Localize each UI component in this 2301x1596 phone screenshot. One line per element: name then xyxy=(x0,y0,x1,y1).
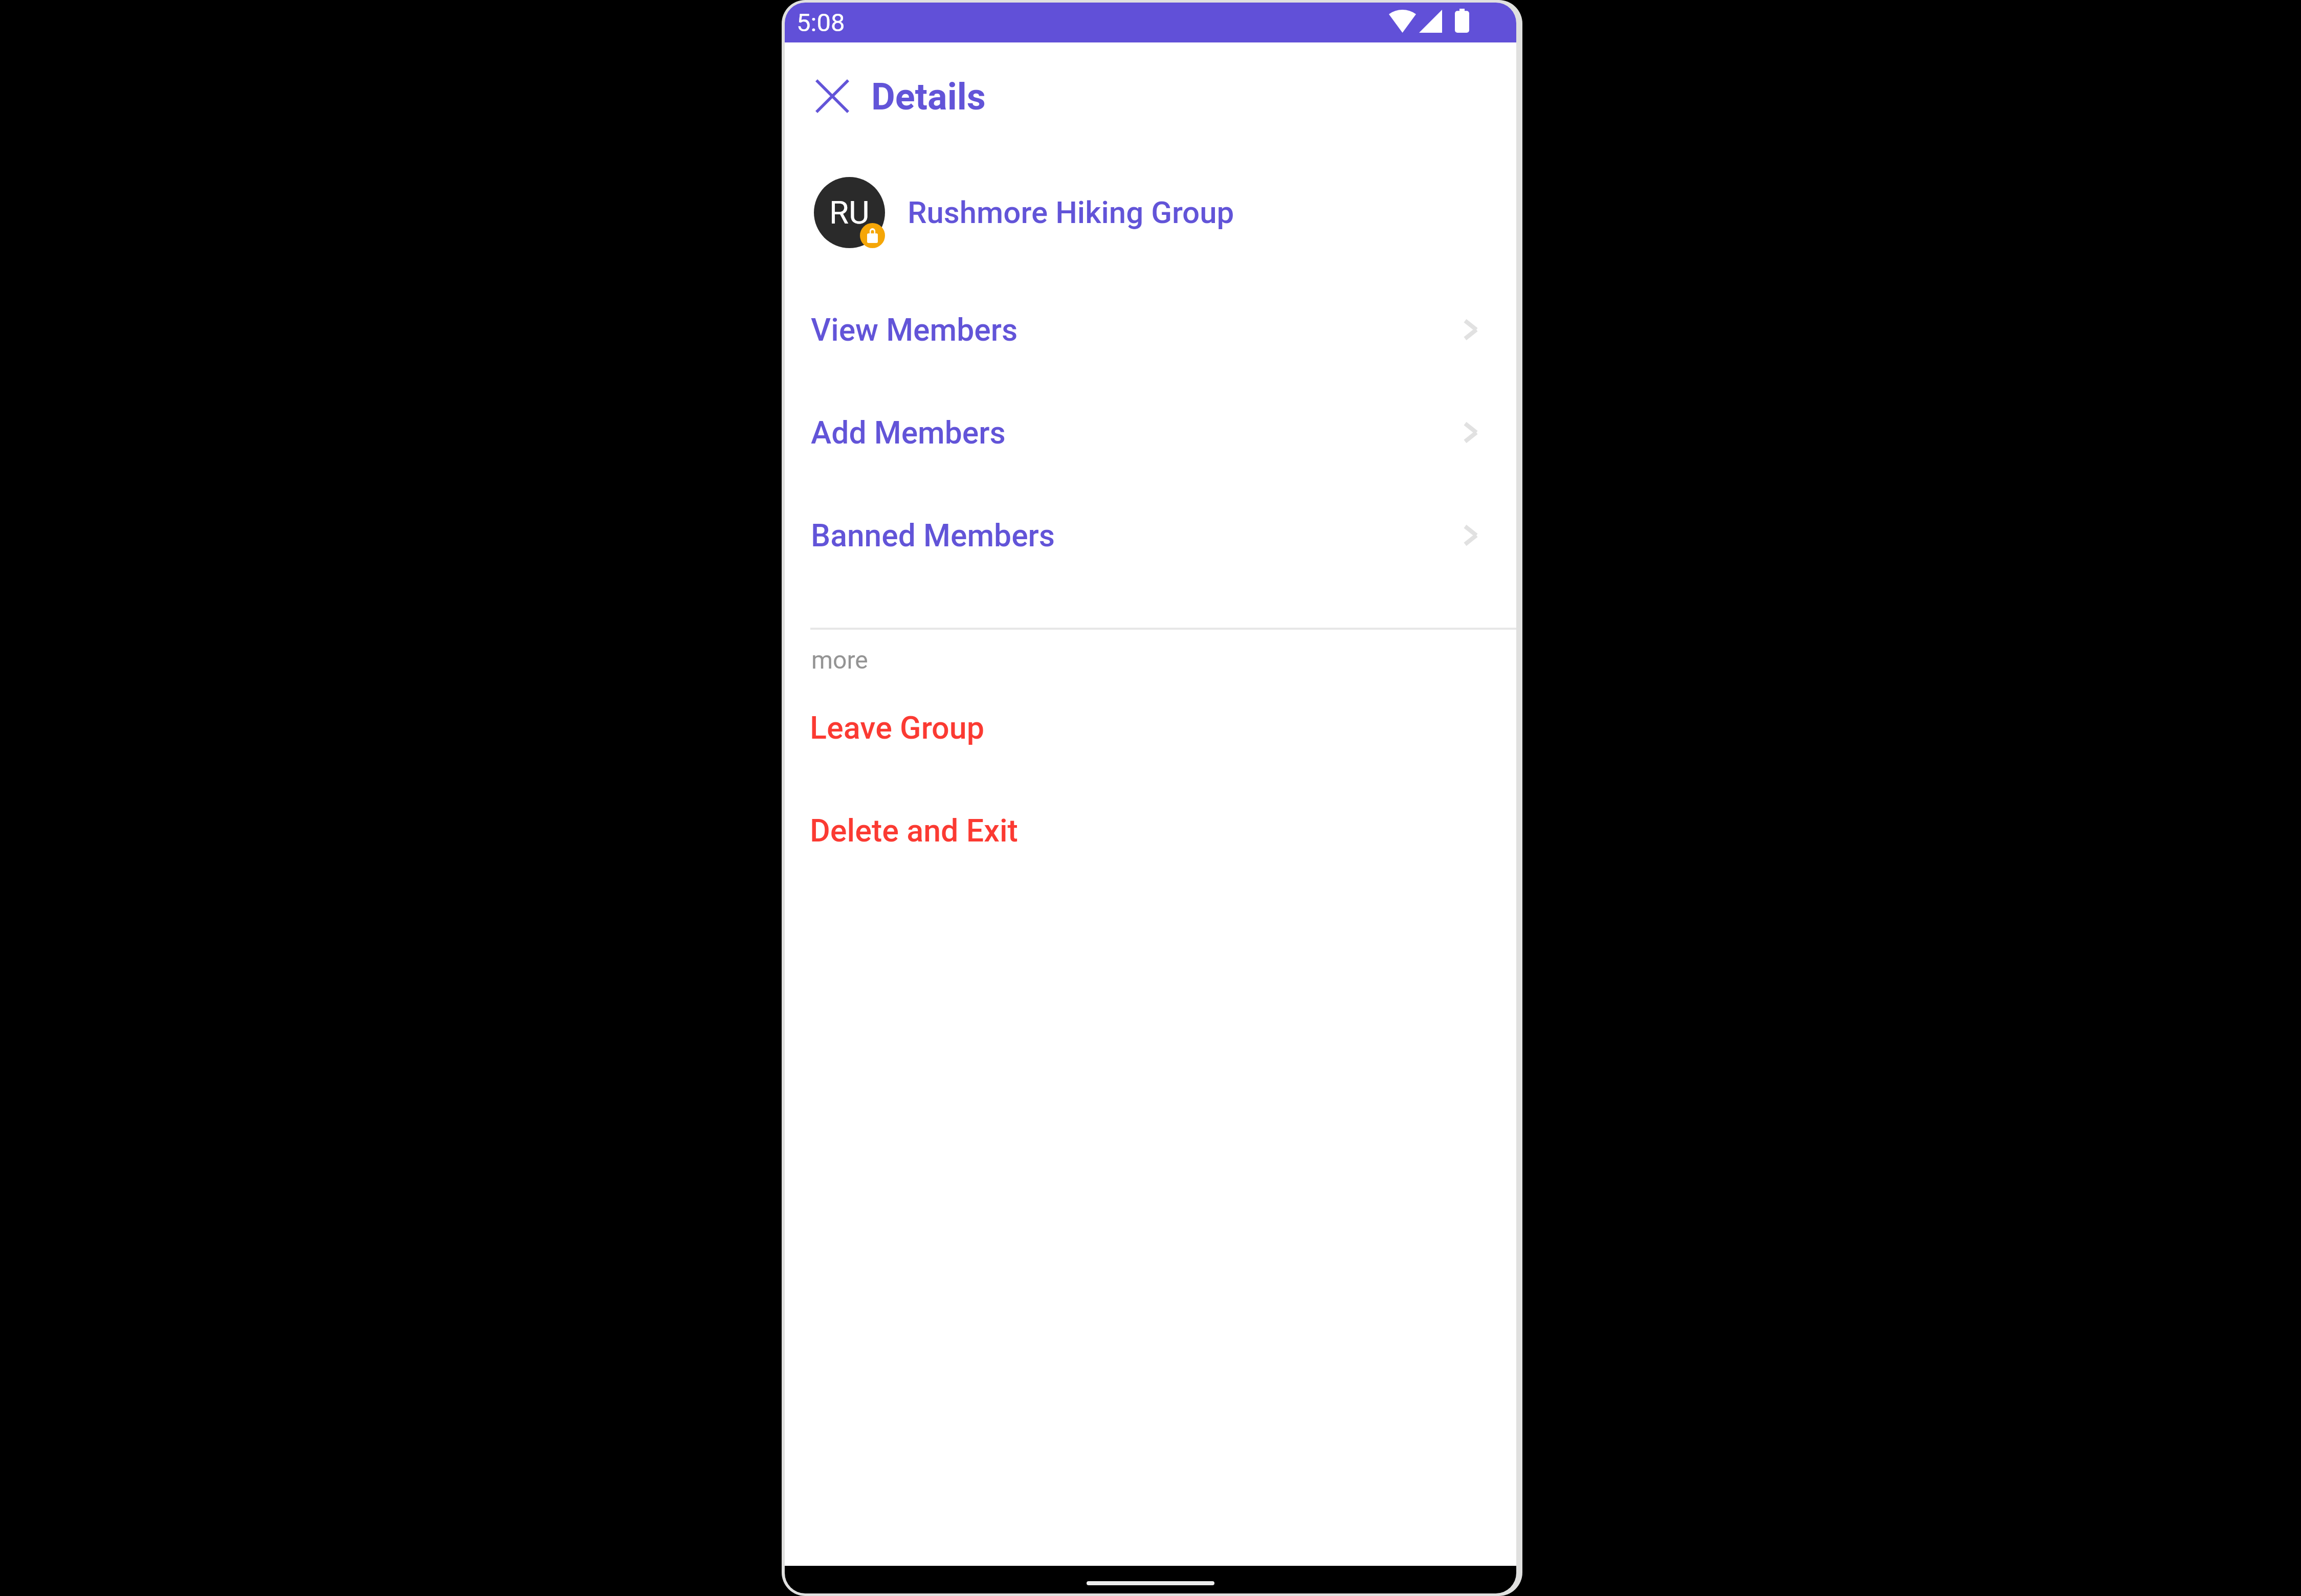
staticText: Delete and Exit xyxy=(810,812,1018,849)
button[interactable]: Close xyxy=(798,61,867,130)
staticText: 5:08 xyxy=(796,8,845,37)
button[interactable]: Delete and Exit xyxy=(785,797,1516,864)
button[interactable]: Add Members xyxy=(785,384,1516,481)
staticText: Details xyxy=(871,75,986,119)
staticText: Banned Members xyxy=(811,517,1055,553)
staticText: more xyxy=(811,646,868,675)
button[interactable]: Leave Group xyxy=(785,695,1516,761)
staticText: RU xyxy=(829,194,870,231)
button[interactable]: RU xyxy=(807,170,1493,254)
staticText: Add Members xyxy=(811,414,1006,451)
button[interactable]: Banned Members xyxy=(785,486,1516,584)
staticText: Rushmore Hiking Group xyxy=(908,194,1234,231)
staticText: Leave Group xyxy=(810,710,984,746)
button[interactable]: View Members xyxy=(785,281,1516,379)
staticText: View Members xyxy=(811,312,1018,348)
